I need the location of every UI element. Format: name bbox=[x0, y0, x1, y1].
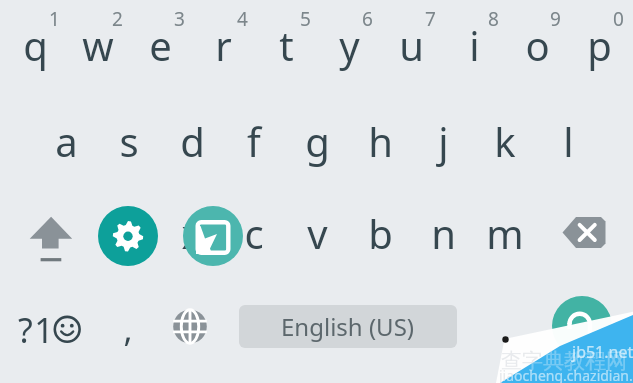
button[interactable]: q bbox=[7, 13, 63, 77]
staticText: English (US) bbox=[281, 310, 415, 343]
button[interactable]: 7 bbox=[402, 4, 458, 34]
button[interactable]: g bbox=[289, 109, 345, 173]
staticText: a bbox=[55, 114, 78, 168]
button[interactable]: h bbox=[352, 109, 408, 173]
staticText: jiaocheng.chazidian.com bbox=[499, 366, 633, 383]
staticText: u bbox=[399, 18, 424, 72]
staticText: , bbox=[123, 306, 133, 352]
button[interactable]: Theme bbox=[183, 206, 243, 266]
button[interactable]: f bbox=[226, 109, 282, 173]
staticText: 8 bbox=[488, 6, 499, 32]
button[interactable]: d bbox=[164, 109, 220, 173]
button[interactable]: 0 bbox=[590, 4, 633, 34]
staticText: e bbox=[149, 18, 172, 72]
button[interactable]: 3 bbox=[151, 4, 207, 34]
staticText: f bbox=[247, 114, 261, 168]
staticText: w bbox=[82, 18, 114, 72]
staticText: 5 bbox=[300, 6, 311, 32]
button[interactable]: u bbox=[383, 13, 439, 77]
staticText: 4 bbox=[237, 6, 248, 32]
button[interactable]: c bbox=[226, 201, 282, 265]
button[interactable]: w bbox=[70, 13, 126, 77]
staticText: 7 bbox=[425, 6, 436, 32]
button[interactable]: y bbox=[321, 13, 377, 77]
button[interactable]: m bbox=[477, 201, 533, 265]
staticText: d bbox=[180, 114, 205, 168]
button[interactable]: Shift bbox=[25, 210, 75, 266]
button[interactable]: 9 bbox=[527, 4, 583, 34]
staticText: jiaocheng.chazidian.com bbox=[499, 366, 633, 383]
staticText: ?1 bbox=[18, 307, 56, 353]
staticText: jb51.net bbox=[572, 341, 633, 363]
staticText: s bbox=[119, 114, 139, 168]
button[interactable]: b bbox=[352, 201, 408, 265]
staticText: z bbox=[120, 206, 139, 260]
staticText: 3 bbox=[174, 6, 185, 32]
staticText: 0 bbox=[613, 6, 624, 32]
button[interactable]: r bbox=[195, 13, 251, 77]
staticText: v bbox=[307, 206, 328, 260]
button[interactable]: 2 bbox=[89, 4, 145, 34]
button[interactable]: Symbols and emoji bbox=[14, 305, 88, 351]
button[interactable]: 6 bbox=[339, 4, 395, 34]
staticText: 1 bbox=[49, 6, 60, 32]
button[interactable]: Settings bbox=[98, 206, 158, 266]
staticText: o bbox=[525, 18, 550, 72]
staticText: 9 bbox=[550, 6, 561, 32]
staticText: h bbox=[368, 114, 393, 168]
staticText: c bbox=[244, 206, 264, 260]
button[interactable]: 8 bbox=[465, 4, 521, 34]
staticText: n bbox=[431, 206, 456, 260]
staticText: i bbox=[469, 18, 480, 72]
button[interactable]: x bbox=[164, 201, 220, 265]
button[interactable]: i bbox=[446, 13, 502, 77]
button[interactable]: Switch language bbox=[172, 308, 208, 345]
button[interactable]: a bbox=[38, 109, 94, 173]
button[interactable]: , bbox=[100, 302, 156, 356]
button[interactable]: j bbox=[415, 109, 471, 173]
staticText: m bbox=[486, 206, 524, 260]
staticText: y bbox=[339, 18, 360, 72]
staticText: l bbox=[563, 114, 574, 168]
button[interactable]: z bbox=[101, 201, 157, 265]
button[interactable]: Backspace bbox=[560, 214, 608, 252]
staticText: 查字典教程网 bbox=[501, 348, 627, 374]
staticText: t bbox=[279, 18, 294, 72]
button[interactable]: s bbox=[101, 109, 157, 173]
button[interactable]: l bbox=[540, 109, 596, 173]
button[interactable]: 5 bbox=[277, 4, 333, 34]
staticText: j bbox=[438, 114, 449, 168]
button[interactable]: n bbox=[415, 201, 471, 265]
staticText: q bbox=[23, 18, 48, 72]
button[interactable]: English (US) bbox=[239, 305, 457, 348]
button[interactable]: e bbox=[132, 13, 188, 77]
button[interactable]: o bbox=[509, 13, 565, 77]
button[interactable]: v bbox=[289, 201, 345, 265]
button[interactable]: 4 bbox=[214, 4, 270, 34]
staticText: r bbox=[215, 18, 232, 72]
button[interactable]: 1 bbox=[26, 4, 82, 34]
staticText: g bbox=[305, 114, 330, 168]
button[interactable]: k bbox=[477, 109, 533, 173]
staticText: p bbox=[587, 18, 612, 72]
button[interactable]: t bbox=[258, 13, 314, 77]
staticText: 2 bbox=[112, 6, 123, 32]
button[interactable]: Enter bbox=[552, 296, 612, 356]
button[interactable]: p bbox=[571, 13, 627, 77]
staticText: 6 bbox=[362, 6, 373, 32]
staticText: 查字典教程网 bbox=[501, 348, 627, 374]
staticText: k bbox=[494, 114, 516, 168]
staticText: x bbox=[181, 206, 203, 260]
staticText: b bbox=[368, 206, 393, 260]
